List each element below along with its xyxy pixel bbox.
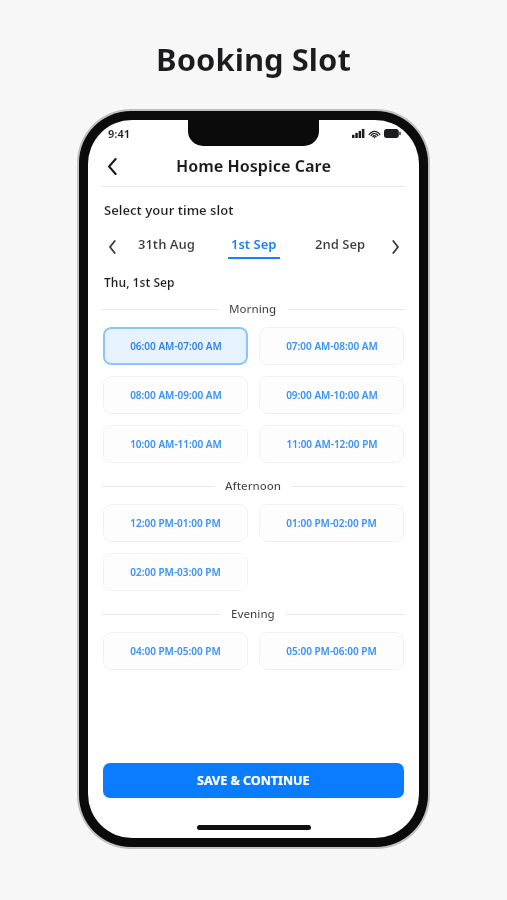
staticText: SAVE & CONTINUE	[197, 772, 310, 789]
button[interactable]: Next dates	[384, 236, 406, 258]
button[interactable]: 11:00 AM-12:00 PM	[259, 425, 404, 463]
staticText: Evening	[231, 606, 275, 622]
staticText: Thu, 1st Sep	[104, 274, 175, 290]
button[interactable]: SAVE & CONTINUE	[103, 763, 404, 798]
staticText: 06:00 AM-07:00 AM	[130, 339, 222, 353]
button[interactable]: 10:00 AM-11:00 AM	[103, 425, 248, 463]
button[interactable]: 12:00 PM-01:00 PM	[103, 504, 248, 542]
staticText: 09:00 AM-10:00 AM	[286, 388, 378, 402]
button[interactable]: Previous dates	[101, 236, 123, 258]
staticText: 07:00 AM-08:00 AM	[286, 339, 378, 353]
staticText: 05:00 PM-06:00 PM	[286, 644, 377, 658]
staticText: Home Hospice Care	[176, 155, 331, 177]
staticText: Morning	[229, 301, 277, 317]
button[interactable]: 01:00 PM-02:00 PM	[259, 504, 404, 542]
staticText: 31th Aug	[138, 235, 195, 253]
button[interactable]: 07:00 AM-08:00 AM	[259, 327, 404, 365]
staticText: Select your time slot	[104, 201, 234, 219]
staticText: 9:41	[108, 126, 130, 141]
staticText: 10:00 AM-11:00 AM	[130, 437, 222, 451]
button[interactable]: 1st Sep	[210, 232, 297, 262]
staticText: 12:00 PM-01:00 PM	[130, 516, 221, 530]
staticText: 02:00 PM-03:00 PM	[130, 565, 221, 579]
staticText: Booking Slot	[156, 38, 351, 80]
button[interactable]: 31th Aug	[123, 232, 210, 262]
button[interactable]: 08:00 AM-09:00 AM	[103, 376, 248, 414]
button[interactable]: 09:00 AM-10:00 AM	[259, 376, 404, 414]
button[interactable]: 2nd Sep	[297, 232, 384, 262]
staticText: 11:00 AM-12:00 PM	[286, 437, 378, 451]
staticText: 01:00 PM-02:00 PM	[286, 516, 377, 530]
staticText: 1st Sep	[231, 235, 277, 253]
staticText: 2nd Sep	[315, 235, 366, 253]
staticText: Afternoon	[225, 478, 281, 494]
button[interactable]: Back	[96, 150, 128, 182]
button[interactable]: 06:00 AM-07:00 AM	[103, 327, 248, 365]
staticText: 08:00 AM-09:00 AM	[130, 388, 222, 402]
staticText: 04:00 PM-05:00 PM	[130, 644, 221, 658]
button[interactable]: 05:00 PM-06:00 PM	[259, 632, 404, 670]
button[interactable]: 02:00 PM-03:00 PM	[103, 553, 248, 591]
button[interactable]: 04:00 PM-05:00 PM	[103, 632, 248, 670]
